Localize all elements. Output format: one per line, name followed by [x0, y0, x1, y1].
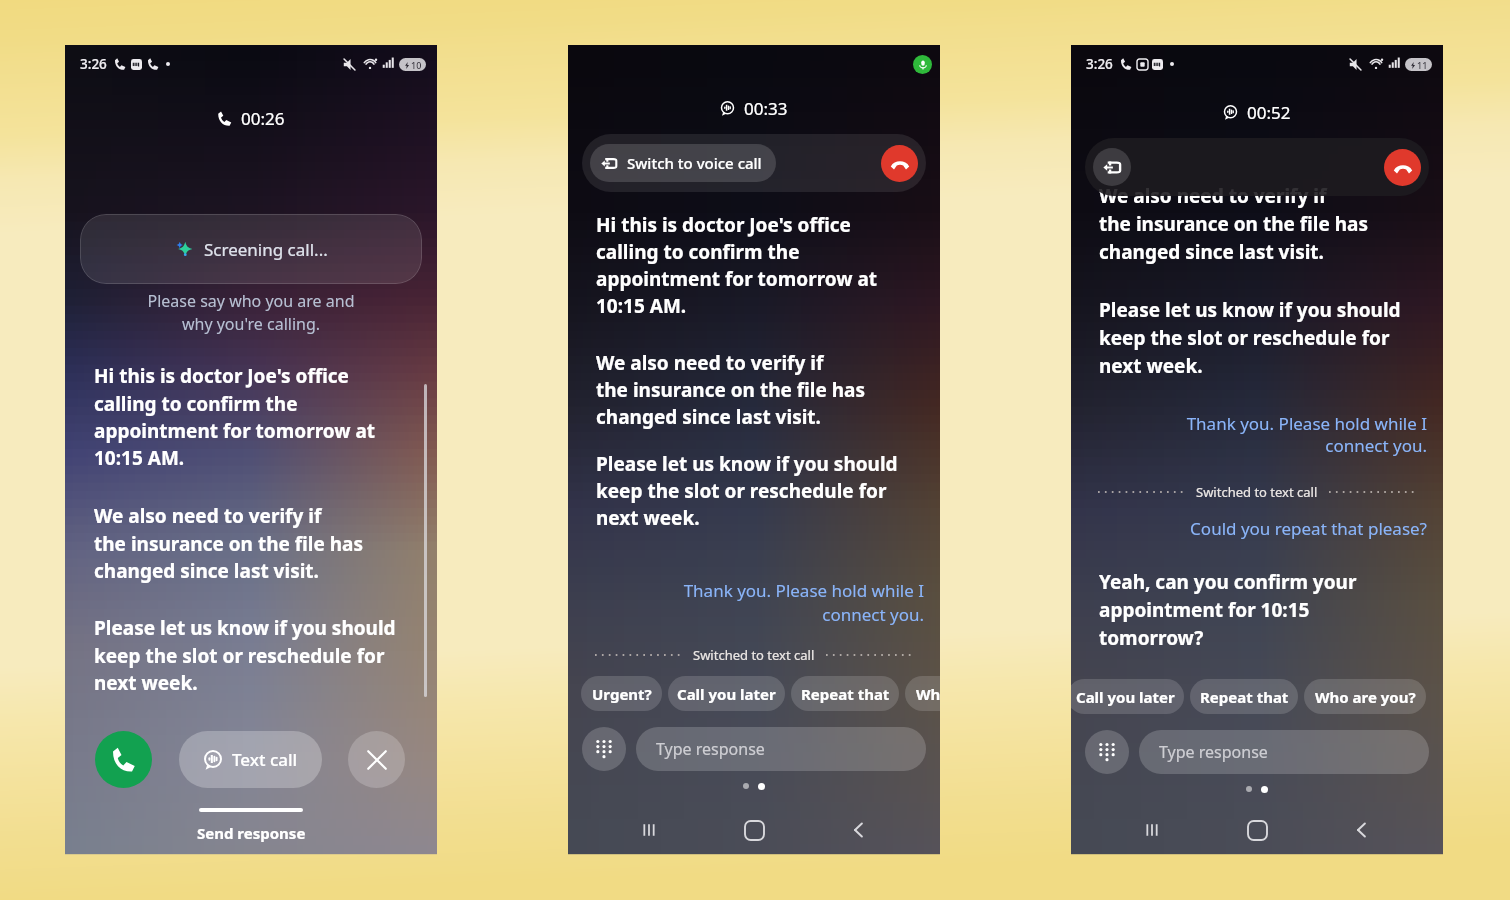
button[interactable]: Type response [656, 727, 926, 771]
button[interactable]: Type response [1159, 730, 1429, 774]
staticText: Urgent? [592, 684, 652, 704]
button[interactable]: Home [730, 807, 778, 853]
button[interactable]: Who are you? [1304, 679, 1426, 714]
button[interactable]: Who are you? [905, 676, 940, 711]
staticText: 00:52 [1247, 101, 1291, 124]
staticText: Please let us know if you should keep th… [596, 451, 898, 531]
staticText: Who are you? [1315, 687, 1416, 707]
staticText: 10 [411, 59, 422, 71]
button[interactable]: Repeat that [1190, 679, 1298, 714]
button[interactable]: Repeat that [791, 676, 899, 711]
button[interactable]: Decline call [348, 731, 405, 788]
staticText: Thank you. Please hold while I connect y… [1071, 412, 1427, 457]
button[interactable]: Back [835, 807, 883, 853]
staticText: Could you repeat that please? [1071, 517, 1427, 540]
staticText: 3:26 [80, 55, 107, 73]
button[interactable]: Switch to voice call [590, 144, 776, 182]
staticText: Hi this is doctor Joe's office calling t… [94, 363, 376, 470]
button[interactable]: Screening call... [80, 214, 422, 284]
other: Microphone active [913, 55, 932, 74]
staticText: Please let us know if you should keep th… [1099, 297, 1401, 379]
staticText: We also need to verify if the insurance … [1099, 183, 1369, 265]
staticText: 00:26 [241, 107, 285, 130]
staticText: We also need to verify if the insurance … [94, 503, 364, 583]
button[interactable]: Urgent? [581, 676, 662, 711]
staticText: Switched to text call [1196, 483, 1318, 501]
button[interactable]: Call you later [668, 676, 785, 711]
staticText: 00:33 [744, 97, 788, 120]
staticText: Yeah, can you confirm your appointment f… [1099, 569, 1357, 651]
staticText: Hi this is doctor Joe's office calling t… [596, 212, 878, 319]
staticText: 3:26 [1086, 55, 1113, 73]
staticText: Repeat that [801, 684, 890, 704]
button[interactable]: Back [1338, 807, 1386, 853]
staticText: Switch to voice call [627, 153, 762, 173]
staticText: Call you later [1076, 687, 1175, 707]
staticText: Thank you. Please hold while I connect y… [568, 579, 924, 626]
button[interactable]: Recents [625, 807, 673, 853]
staticText: Screening call... [204, 238, 328, 261]
staticText: Call you later [677, 684, 776, 704]
staticText: Repeat that [1200, 687, 1289, 707]
staticText: 11 [1417, 59, 1428, 71]
button[interactable]: Recents [1128, 807, 1176, 853]
button[interactable]: Dialpad [582, 727, 626, 771]
button[interactable]: Answer call [95, 731, 152, 788]
staticText: Type response [656, 738, 765, 760]
staticText: Text call [232, 748, 298, 771]
staticText: Type response [1159, 741, 1268, 763]
staticText: Who are you? [916, 684, 940, 704]
staticText: Please let us know if you should keep th… [94, 615, 396, 695]
staticText: Switched to text call [693, 646, 815, 664]
button[interactable]: Text call [179, 731, 322, 788]
button[interactable]: Home [1233, 807, 1281, 853]
button[interactable]: End call [1384, 149, 1421, 186]
staticText: Please say who you are and why you're ca… [85, 290, 417, 335]
button[interactable]: Call you later [1071, 679, 1184, 714]
staticText: Send response [197, 823, 306, 843]
staticText: We also need to verify if the insurance … [596, 350, 866, 430]
button[interactable]: Switch to voice call [1093, 148, 1131, 186]
button[interactable]: Dialpad [1085, 730, 1129, 774]
button[interactable]: End call [881, 145, 918, 182]
